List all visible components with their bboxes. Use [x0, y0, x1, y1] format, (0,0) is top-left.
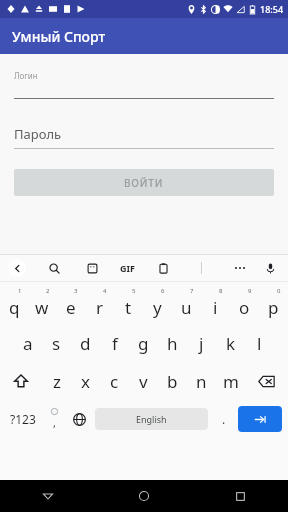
button[interactable]: Backspace	[245, 362, 288, 400]
staticText: k	[226, 332, 236, 355]
button[interactable]: Voice input	[260, 258, 280, 278]
staticText: v	[139, 370, 148, 393]
button[interactable]: Back	[0, 480, 96, 512]
staticText: 2	[46, 287, 50, 295]
staticText: 8	[219, 287, 223, 295]
button[interactable]: 9	[230, 286, 259, 324]
staticText: 5	[132, 287, 136, 295]
button[interactable]: ВОЙТИ	[14, 169, 274, 196]
button[interactable]: x	[71, 362, 100, 400]
button[interactable]: Recents	[192, 480, 288, 512]
staticText: q	[9, 296, 20, 319]
button[interactable]: 3	[56, 286, 85, 324]
button[interactable]: ?123	[4, 400, 42, 438]
button[interactable]: Back	[8, 259, 26, 277]
staticText: h	[167, 332, 178, 355]
staticText: j	[199, 332, 204, 355]
button[interactable]: Stickers	[82, 258, 102, 278]
button[interactable]: Shift	[0, 362, 42, 400]
staticText: 3	[74, 287, 78, 295]
staticText: 9	[248, 287, 252, 295]
button[interactable]: Пароль	[14, 125, 274, 149]
staticText: Пароль	[14, 125, 62, 143]
button[interactable]: 1	[0, 286, 28, 324]
staticText: 7	[190, 287, 194, 295]
staticText: English	[136, 413, 167, 425]
staticText: n	[196, 370, 207, 393]
staticText: 18:54	[260, 3, 284, 15]
button[interactable]: l	[245, 324, 274, 362]
button[interactable]: Логин	[14, 70, 274, 99]
staticText: y	[153, 296, 162, 319]
staticText: c	[110, 370, 119, 393]
button[interactable]: 8	[201, 286, 230, 324]
button[interactable]: Clipboard	[153, 258, 173, 278]
button[interactable]: g	[129, 324, 158, 362]
staticText: f	[112, 332, 118, 355]
staticText: GIF	[120, 262, 135, 274]
button[interactable]: f	[100, 324, 129, 362]
button[interactable]: d	[71, 324, 100, 362]
button[interactable]: n	[187, 362, 216, 400]
staticText: z	[53, 370, 61, 393]
staticText: 0	[277, 287, 281, 295]
staticText: w	[35, 296, 49, 319]
button[interactable]: a	[14, 324, 42, 362]
button[interactable]: s	[42, 324, 71, 362]
staticText: i	[213, 296, 218, 319]
staticText: x	[81, 370, 90, 393]
button[interactable]: Search	[44, 258, 64, 278]
staticText: g	[138, 332, 149, 355]
staticText: e	[66, 296, 76, 319]
staticText: Умный Спорт	[12, 27, 106, 46]
staticText: ВОЙТИ	[124, 176, 164, 190]
button[interactable]: b	[158, 362, 187, 400]
staticText: 1	[18, 287, 22, 295]
staticText: Логин	[14, 70, 38, 81]
button[interactable]: Emoji	[42, 400, 67, 438]
staticText: d	[80, 332, 91, 355]
button[interactable]: 0	[259, 286, 288, 324]
staticText: l	[257, 332, 262, 355]
staticText: .	[222, 411, 226, 427]
button[interactable]: 2	[28, 286, 56, 324]
staticText: 6	[161, 287, 165, 295]
button[interactable]: Home	[96, 480, 192, 512]
staticText: u	[181, 296, 192, 319]
staticText: o	[239, 296, 250, 319]
button[interactable]: k	[216, 324, 245, 362]
button[interactable]: Change language	[67, 400, 92, 438]
button[interactable]: j	[187, 324, 216, 362]
staticText: r	[96, 296, 104, 319]
button[interactable]: m	[216, 362, 245, 400]
staticText: s	[52, 332, 61, 355]
staticText: m	[223, 370, 239, 393]
button[interactable]: Enter	[238, 406, 282, 432]
staticText: 4	[103, 287, 107, 295]
button[interactable]: More options	[230, 258, 250, 278]
button[interactable]: h	[158, 324, 187, 362]
button[interactable]: v	[129, 362, 158, 400]
staticText: b	[167, 370, 178, 393]
staticText: t	[125, 296, 132, 319]
button[interactable]: English	[95, 408, 208, 430]
button[interactable]: 5	[114, 286, 143, 324]
button[interactable]: z	[42, 362, 71, 400]
button[interactable]: 6	[143, 286, 172, 324]
button[interactable]: .	[211, 400, 236, 438]
button[interactable]: c	[100, 362, 129, 400]
button[interactable]: GIF	[120, 258, 135, 278]
staticText: p	[268, 296, 279, 319]
button[interactable]: 7	[172, 286, 201, 324]
button[interactable]: 4	[85, 286, 114, 324]
staticText: ?123	[10, 411, 36, 427]
staticText: ,	[53, 415, 56, 430]
staticText: a	[23, 332, 33, 355]
